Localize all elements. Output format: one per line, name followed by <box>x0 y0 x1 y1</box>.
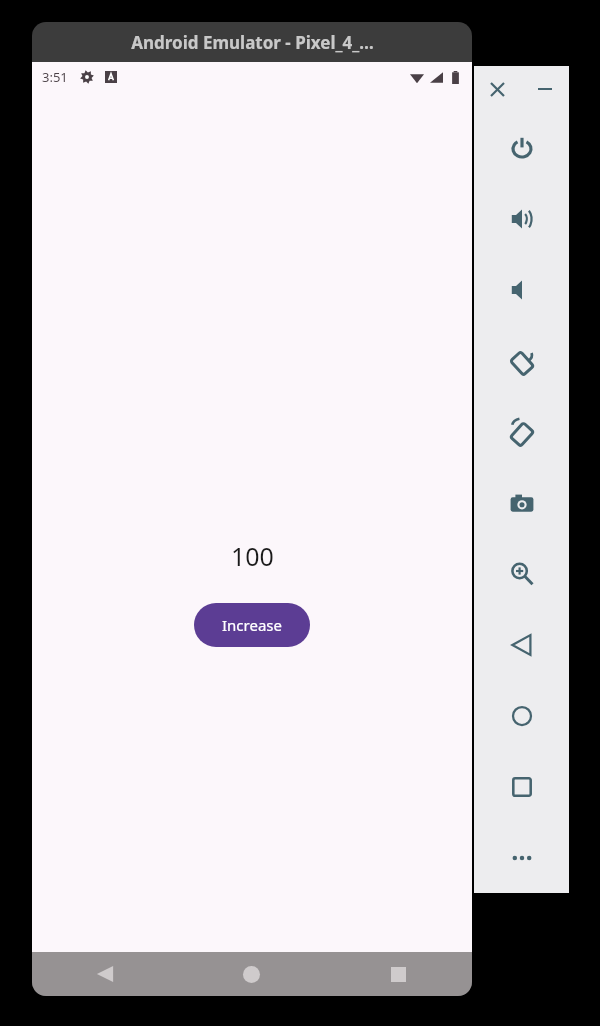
staticText: Increase <box>222 615 282 635</box>
button[interactable]: Home <box>474 680 569 751</box>
button[interactable]: Recent apps <box>325 967 472 982</box>
button[interactable]: Minimize <box>521 66 569 112</box>
button[interactable]: Close <box>474 66 521 112</box>
button[interactable]: Back <box>474 609 569 680</box>
button[interactable]: Home <box>178 966 325 983</box>
button[interactable]: Increase <box>194 603 310 647</box>
staticText: Android Emulator - Pixel_4_… <box>131 31 374 54</box>
button[interactable]: More <box>474 822 569 893</box>
button[interactable]: Back <box>32 965 178 983</box>
button[interactable]: Power <box>474 112 569 183</box>
button[interactable]: Overview <box>474 751 569 822</box>
staticText: 3:51 <box>42 68 68 86</box>
button[interactable]: Rotate left <box>474 325 569 396</box>
button[interactable]: Volume down <box>474 254 569 325</box>
staticText: 100 <box>231 539 274 573</box>
button[interactable]: Zoom <box>474 538 569 609</box>
button[interactable]: Take screenshot <box>474 467 569 538</box>
button[interactable]: Rotate right <box>474 396 569 467</box>
button[interactable]: Volume up <box>474 183 569 254</box>
